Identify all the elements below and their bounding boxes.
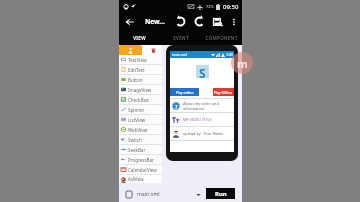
staticText: New... [145, 17, 165, 26]
button[interactable]: SeekBar [119, 145, 162, 154]
button[interactable]: Run [206, 188, 235, 199]
staticText: CalendarView [128, 167, 157, 173]
staticText: Play online [176, 90, 194, 95]
button[interactable]: EditText [119, 65, 162, 74]
staticText: Run [215, 190, 227, 198]
staticText: ? [175, 103, 178, 110]
button[interactable]: CheckBox [119, 95, 162, 104]
button[interactable]: TextView [119, 55, 162, 64]
button[interactable]: VIEW [119, 30, 160, 45]
staticText: SeekBar [128, 147, 146, 153]
staticText: ImageView [128, 87, 152, 93]
button[interactable]: ProgressBar [119, 155, 162, 164]
staticText: main.xml [172, 52, 187, 57]
staticText: ProgressBar [128, 157, 154, 163]
button[interactable]: Button [119, 75, 162, 84]
button[interactable]: ImageView [119, 85, 162, 94]
staticText: EVENT [173, 35, 189, 41]
button[interactable]: Play Offline [213, 88, 234, 96]
button[interactable]: Spinner [119, 105, 162, 114]
button[interactable]: Select file [194, 190, 202, 198]
button[interactable]: upload by : Your Name [172, 127, 234, 140]
staticText: upload by : Your Name [183, 131, 224, 136]
staticText: AdView [128, 176, 144, 182]
button[interactable]: CalendarView [119, 165, 162, 174]
staticText: 1:30 [226, 52, 233, 57]
button[interactable]: Switch [119, 135, 162, 144]
staticText: S [199, 65, 206, 78]
staticText: main.xml [137, 190, 160, 197]
button[interactable]: EVENT [160, 30, 201, 45]
staticText: Switch [128, 137, 142, 143]
staticText: m [237, 56, 248, 71]
button[interactable]: Back [123, 15, 137, 29]
staticText: Button [128, 77, 143, 83]
button[interactable]: ListView [119, 115, 162, 124]
button[interactable]: Layout file [124, 189, 134, 199]
button[interactable]: Delete [145, 45, 162, 55]
button[interactable]: MY VIDEO TITLE [172, 113, 234, 126]
staticText: VIEW [133, 35, 146, 41]
button[interactable]: Redo [190, 13, 208, 30]
staticText: Spinner [128, 107, 145, 113]
staticText: About my video and information [183, 101, 219, 111]
button[interactable]: Save [208, 13, 228, 30]
button[interactable]: Widgets palette [119, 45, 142, 55]
button[interactable]: WebView [119, 125, 162, 134]
staticText: ListView [128, 117, 146, 123]
staticText: CheckBox [128, 97, 149, 103]
button[interactable]: Play online [170, 88, 199, 96]
button[interactable]: AdView [119, 175, 162, 183]
button[interactable]: Undo [170, 13, 190, 30]
staticText: MY VIDEO TITLE [183, 117, 212, 122]
staticText: COMPONENT [205, 35, 238, 41]
staticText: 72% [206, 4, 214, 9]
button[interactable]: COMPONENT [201, 30, 242, 45]
staticText: TextView [128, 57, 147, 63]
button[interactable]: ? [172, 99, 234, 112]
staticText: WebView [128, 127, 148, 133]
staticText: 09:50 [223, 3, 239, 11]
staticText: Play Offline [214, 90, 233, 95]
button[interactable]: More options [228, 13, 239, 30]
staticText: EditText [128, 67, 145, 73]
